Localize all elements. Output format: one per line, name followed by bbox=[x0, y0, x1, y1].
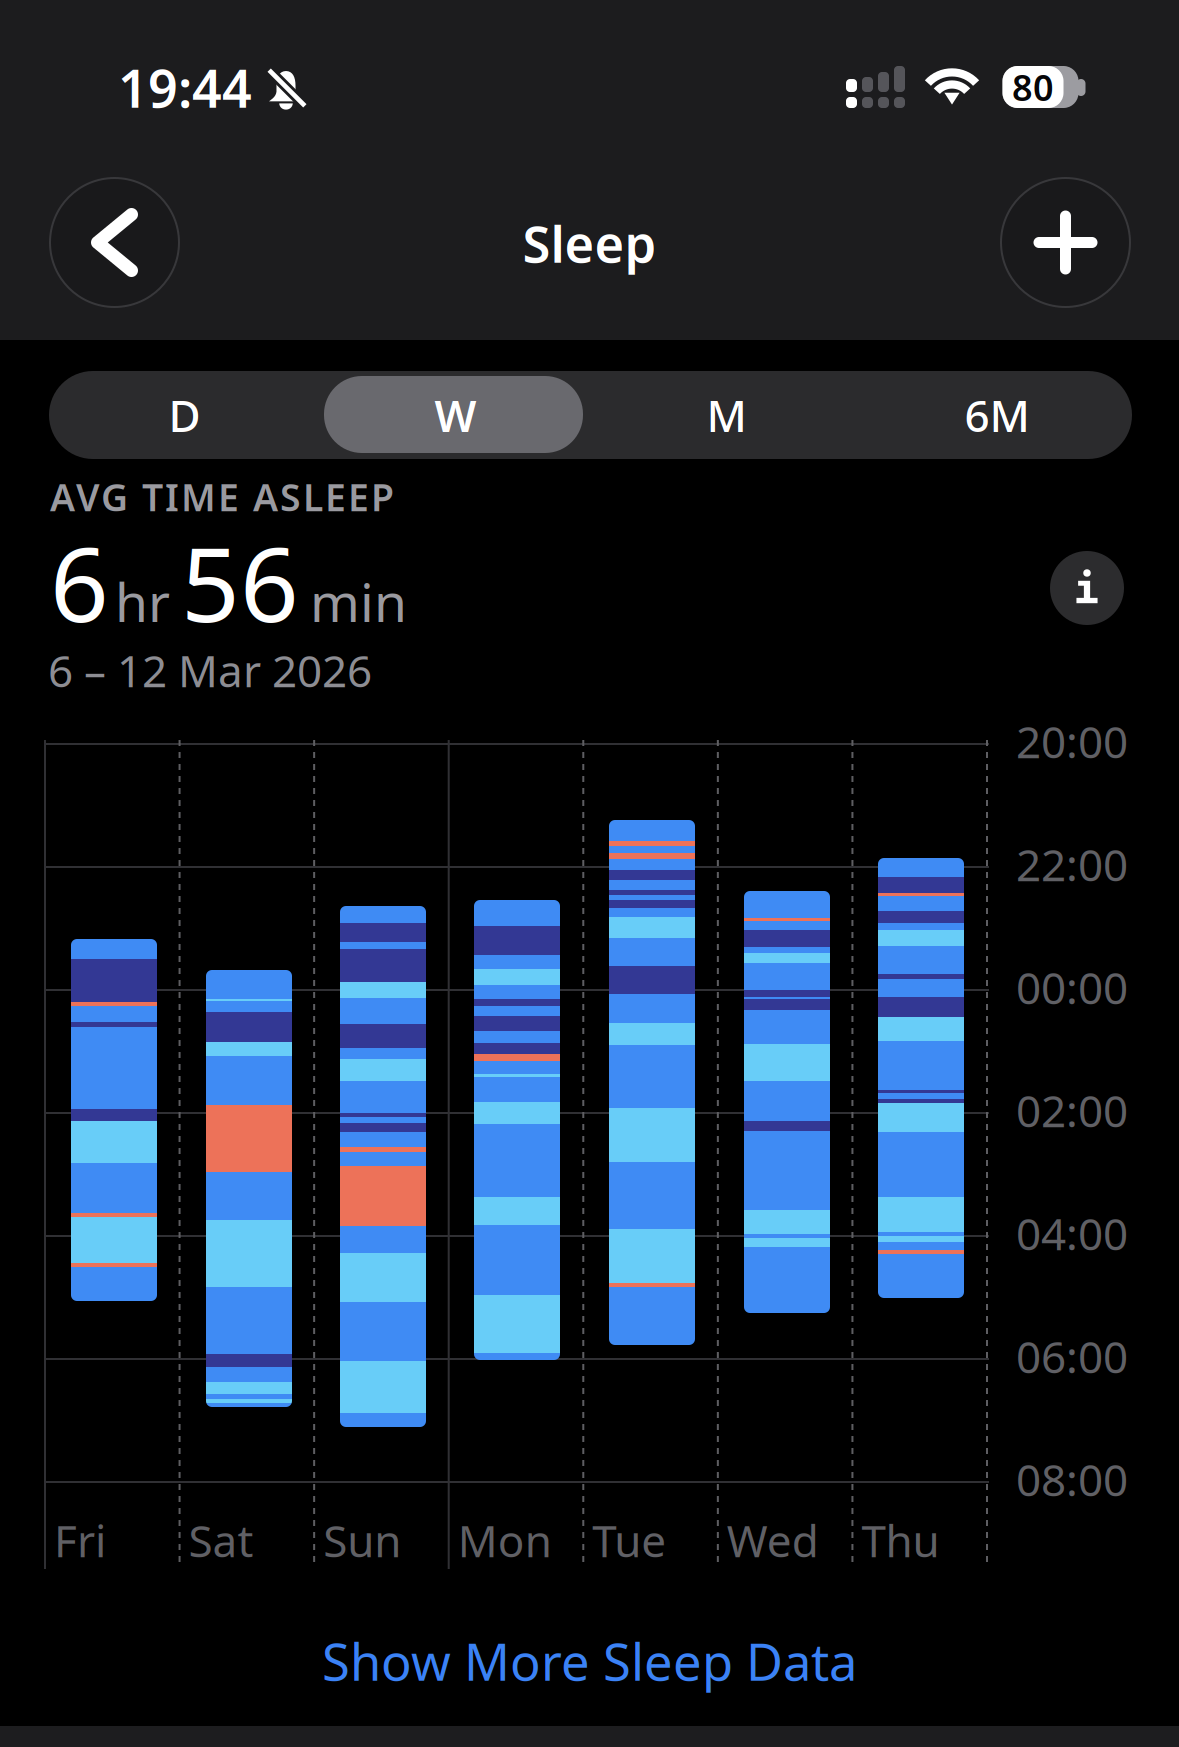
button[interactable]: Add bbox=[1000, 177, 1131, 308]
staticText: hr bbox=[115, 566, 170, 637]
staticText: W bbox=[434, 386, 476, 444]
staticText: 00:00 bbox=[1016, 958, 1128, 1016]
staticText: 6 – 12 Mar 2026 bbox=[48, 641, 372, 699]
staticText: 04:00 bbox=[1016, 1204, 1128, 1262]
staticText: 80 bbox=[1012, 63, 1054, 111]
staticText: 6 bbox=[50, 514, 109, 650]
button[interactable]: M bbox=[591, 371, 862, 459]
button[interactable]: Info bbox=[1050, 551, 1124, 625]
staticText: 02:00 bbox=[1016, 1081, 1128, 1139]
staticText: Sleep bbox=[522, 209, 656, 277]
button[interactable]: 6M bbox=[862, 371, 1132, 459]
staticText: 06:00 bbox=[1016, 1327, 1128, 1385]
button[interactable]: W bbox=[320, 371, 591, 459]
button[interactable]: D bbox=[49, 371, 320, 459]
staticText: Fri bbox=[54, 1511, 106, 1569]
staticText: min bbox=[310, 566, 407, 637]
staticText: Tue bbox=[592, 1511, 666, 1569]
staticText: Sat bbox=[189, 1511, 254, 1569]
staticText: 22:00 bbox=[1016, 835, 1128, 893]
button[interactable]: Show More Sleep Data bbox=[0, 1611, 1179, 1711]
staticText: D bbox=[168, 386, 200, 444]
staticText: Sun bbox=[323, 1511, 401, 1569]
staticText: AVG TIME ASLEEP bbox=[50, 472, 394, 522]
button[interactable]: Back bbox=[49, 177, 180, 308]
staticText: 19:44 bbox=[118, 53, 252, 122]
staticText: 20:00 bbox=[1016, 712, 1128, 770]
staticText: Show More Sleep Data bbox=[322, 1627, 857, 1695]
staticText: Mon bbox=[458, 1511, 552, 1569]
staticText: Wed bbox=[727, 1511, 819, 1569]
staticText: M bbox=[706, 386, 746, 444]
staticText: 08:00 bbox=[1016, 1450, 1128, 1508]
staticText: 56 bbox=[181, 514, 299, 650]
staticText: 6M bbox=[964, 386, 1029, 444]
staticText: Thu bbox=[861, 1511, 939, 1569]
